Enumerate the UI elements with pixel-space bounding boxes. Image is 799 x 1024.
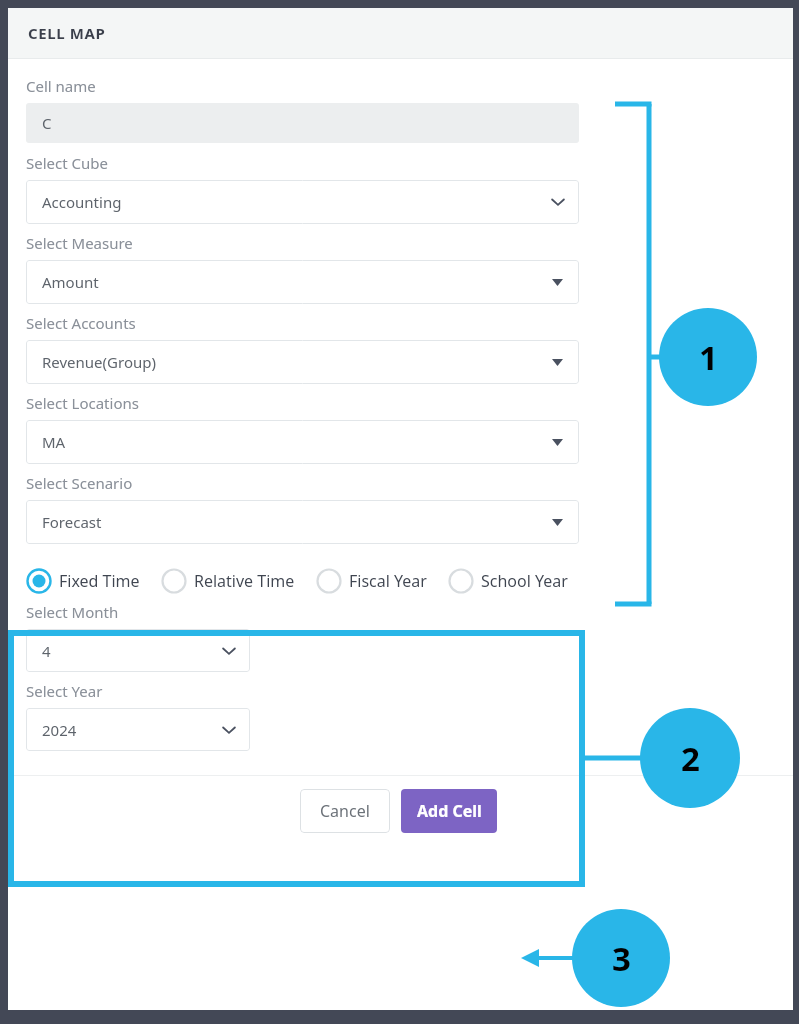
button[interactable]: Fiscal Year (316, 568, 429, 594)
staticText: Accounting (42, 192, 122, 212)
button[interactable]: Revenue(Group) (26, 340, 579, 384)
staticText: Select Locations (26, 393, 139, 413)
staticText: 3 (612, 936, 631, 981)
staticText: 2024 (42, 720, 77, 740)
staticText: Select Accounts (26, 313, 136, 333)
button[interactable]: Amount (26, 260, 579, 304)
button[interactable]: Accounting (26, 180, 579, 224)
button[interactable]: Add Cell (401, 789, 497, 833)
staticText: Cell name (26, 76, 96, 96)
staticText: 1 (699, 335, 718, 380)
staticText: Revenue(Group) (42, 352, 156, 372)
staticText: Relative Time (194, 570, 295, 592)
staticText: Select Year (26, 681, 103, 701)
staticText: Fiscal Year (349, 570, 427, 592)
staticText: Forecast (42, 512, 102, 532)
button[interactable]: MA (26, 420, 579, 464)
button[interactable]: C (26, 103, 579, 143)
other: Annotation 2 (660, 728, 720, 788)
staticText: Cancel (320, 800, 370, 822)
staticText: Add Cell (417, 800, 482, 822)
staticText: Amount (42, 272, 99, 292)
staticText: Fixed Time (59, 570, 140, 592)
other: Annotation 1 (678, 327, 738, 387)
staticText: C (42, 113, 52, 133)
staticText: School Year (481, 570, 568, 592)
button[interactable]: 4 (26, 629, 250, 672)
staticText: Select Month (26, 602, 119, 622)
button[interactable]: Cancel (300, 789, 390, 833)
button[interactable]: Fixed Time (26, 568, 142, 594)
staticText: Select Measure (26, 233, 133, 253)
button[interactable]: School Year (448, 568, 570, 594)
staticText: MA (42, 432, 66, 452)
staticText: CELL MAP (28, 23, 106, 43)
staticText: Select Scenario (26, 473, 133, 493)
button[interactable]: Relative Time (161, 568, 297, 594)
button[interactable]: 2024 (26, 708, 250, 751)
staticText: 2 (681, 736, 700, 781)
staticText: Select Cube (26, 153, 108, 173)
other: Annotation 3 (591, 928, 651, 988)
button[interactable]: Forecast (26, 500, 579, 544)
staticText: 4 (42, 641, 51, 661)
